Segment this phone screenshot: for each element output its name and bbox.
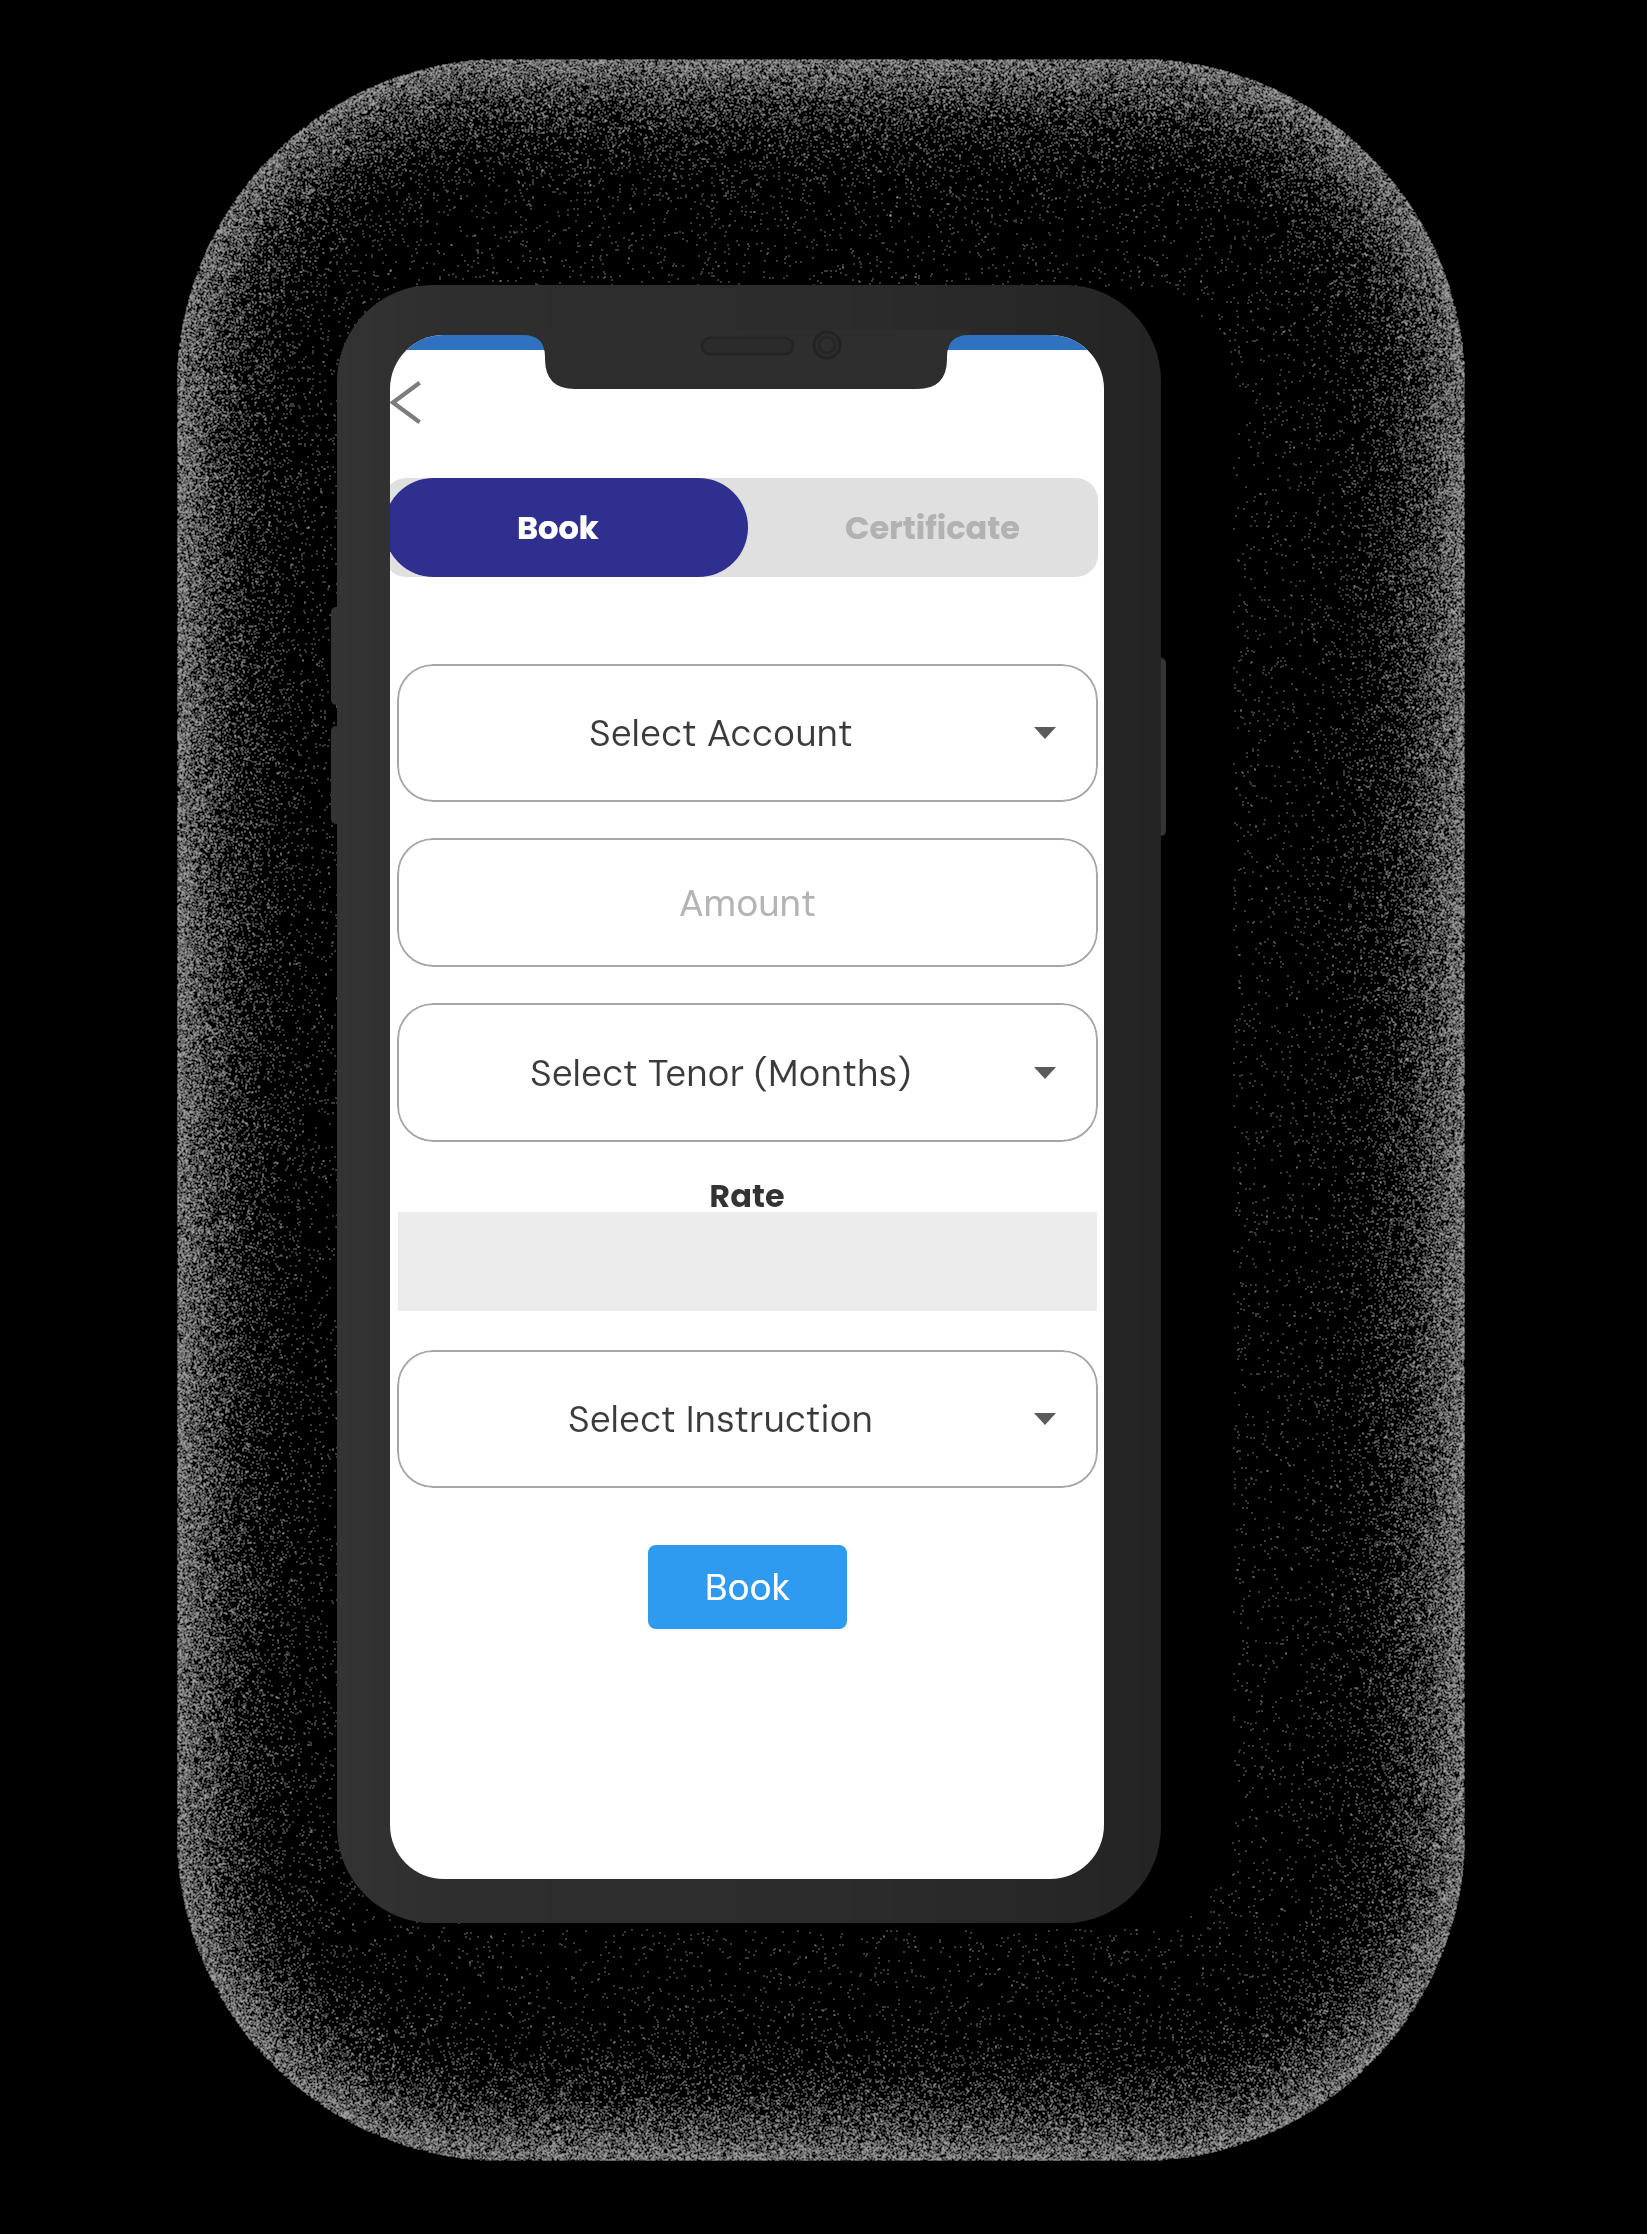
button[interactable]: Amount: [397, 838, 1098, 967]
button[interactable]: Certificate: [748, 478, 1098, 577]
button[interactable]: Select Instruction: [397, 1350, 1098, 1488]
staticText: Select Account: [589, 709, 853, 757]
button[interactable]: Back: [390, 359, 440, 445]
button[interactable]: Select Account: [397, 664, 1098, 802]
staticText: Certificate: [845, 505, 1020, 550]
staticText: Select Tenor (Months): [530, 1049, 912, 1097]
staticText: Rate: [390, 1173, 1104, 1218]
staticText: Amount: [679, 879, 816, 927]
staticText: Book: [517, 505, 599, 550]
button[interactable]: Book: [390, 478, 748, 577]
button[interactable]: Select Tenor (Months): [397, 1003, 1098, 1142]
staticText: Book: [705, 1563, 791, 1611]
staticText: Select Instruction: [568, 1395, 873, 1443]
button[interactable]: Book: [648, 1545, 847, 1629]
